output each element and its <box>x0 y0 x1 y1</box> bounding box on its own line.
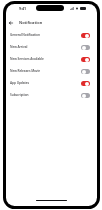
staticText: App Updates <box>10 81 81 85</box>
button[interactable]: Toggle <box>81 81 90 86</box>
button[interactable]: Toggle <box>81 69 90 74</box>
button[interactable]: Subscription <box>10 90 90 100</box>
staticText: New Releases Movie <box>10 69 81 73</box>
button[interactable]: Back <box>8 19 14 26</box>
button[interactable]: App Updates <box>10 78 90 88</box>
button[interactable]: New Arrival <box>10 42 90 52</box>
button[interactable]: New Services Available <box>10 54 90 64</box>
staticText: General Notification <box>10 33 81 37</box>
staticText: New Arrival <box>10 45 81 49</box>
button[interactable]: New Releases Movie <box>10 66 90 76</box>
staticText: 9:41 <box>19 6 27 11</box>
button[interactable]: General Notification <box>10 30 90 40</box>
button[interactable]: Toggle <box>81 93 90 98</box>
button[interactable]: Toggle <box>81 45 90 50</box>
staticText: Subscription <box>10 93 81 97</box>
button[interactable]: Toggle <box>81 57 90 62</box>
staticText: New Services Available <box>10 57 81 61</box>
staticText: Notification <box>19 20 43 25</box>
button[interactable]: Toggle <box>81 33 90 38</box>
